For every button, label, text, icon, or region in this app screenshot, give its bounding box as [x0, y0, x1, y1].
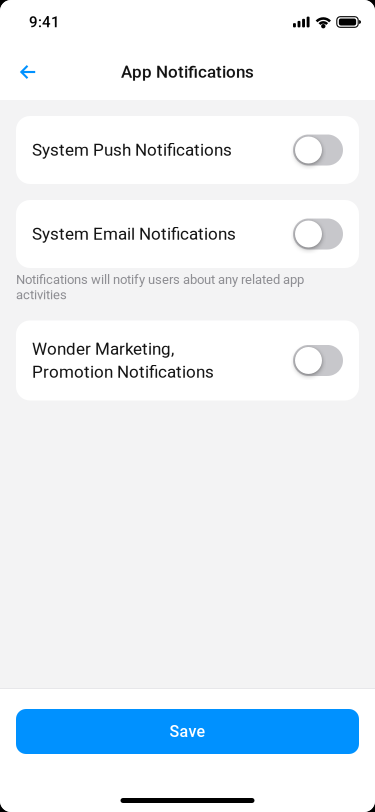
staticText: Notifications will notify users about an… — [16, 272, 304, 302]
button[interactable]: System Email Notifications — [16, 200, 359, 268]
staticText: System Push Notifications — [32, 138, 232, 161]
button[interactable]: System Push Notifications — [16, 116, 359, 184]
staticText: 9:41 — [29, 13, 60, 31]
button[interactable]: Save — [16, 709, 359, 754]
staticText: App Notifications — [121, 62, 254, 82]
button[interactable]: Wonder Marketing, Promotion Notification… — [16, 320, 359, 400]
staticText: System Email Notifications — [32, 222, 236, 245]
staticText: Wonder Marketing, Promotion Notification… — [32, 337, 214, 384]
staticText: Save — [169, 722, 205, 741]
button[interactable]: Back — [6, 50, 50, 94]
